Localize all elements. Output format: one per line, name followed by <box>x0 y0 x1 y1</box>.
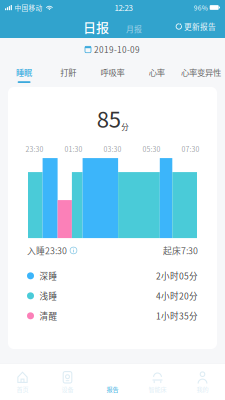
staticText: 首页 <box>16 385 28 393</box>
staticText: 07:30 <box>181 144 199 154</box>
staticText: 智能床 <box>148 385 166 393</box>
staticText: 报告 <box>106 385 118 393</box>
staticText: 入睡23:30 <box>27 244 67 257</box>
button[interactable]: 首页 <box>0 364 45 400</box>
button[interactable]: 心率变异性 <box>179 61 223 87</box>
button[interactable]: 日报 <box>80 17 112 36</box>
button[interactable]: 打鼾 <box>46 61 90 87</box>
staticText: 01:30 <box>64 144 82 154</box>
staticText: 1小时35分 <box>156 310 198 322</box>
staticText: 分 <box>121 121 128 132</box>
staticText: 起床7:30 <box>163 244 198 257</box>
button[interactable]: 月报 <box>123 23 145 34</box>
staticText: 85 <box>97 102 121 134</box>
staticText: 2小时05分 <box>156 270 198 282</box>
staticText: 睡眠 <box>16 66 32 78</box>
staticText: 23:30 <box>25 144 43 154</box>
button[interactable]: 睡眠 <box>2 61 46 87</box>
button[interactable]: 心率 <box>135 61 179 87</box>
staticText: 96% <box>194 3 208 12</box>
button[interactable]: 设备 <box>45 364 90 400</box>
staticText: 我的 <box>196 385 208 393</box>
button[interactable]: 2019-10-09 <box>77 39 148 59</box>
staticText: 中国移动 <box>14 3 42 12</box>
button[interactable]: 智能床 <box>135 364 180 400</box>
staticText: 12:23 <box>114 2 132 13</box>
staticText: 心率 <box>149 66 165 78</box>
staticText: 2019-10-09 <box>94 43 140 55</box>
staticText: 03:30 <box>103 144 121 154</box>
staticText: 清醒 <box>39 310 57 322</box>
staticText: 浅睡 <box>39 290 57 302</box>
button[interactable]: 我的 <box>180 364 225 400</box>
staticText: 4小时20分 <box>156 290 198 302</box>
staticText: 呼吸率 <box>100 66 124 78</box>
button[interactable]: 报告 <box>90 364 135 400</box>
staticText: 打鼾 <box>60 66 76 78</box>
staticText: 日报 <box>83 17 109 36</box>
staticText: 更新报告 <box>184 21 216 32</box>
button[interactable]: 呼吸率 <box>90 61 135 87</box>
staticText: 05:30 <box>142 144 160 154</box>
staticText: 设备 <box>61 385 73 393</box>
staticText: 月报 <box>126 23 142 34</box>
button[interactable]: 更新报告 <box>172 18 220 35</box>
staticText: 心率变异性 <box>181 66 221 78</box>
staticText: 深睡 <box>39 270 57 282</box>
